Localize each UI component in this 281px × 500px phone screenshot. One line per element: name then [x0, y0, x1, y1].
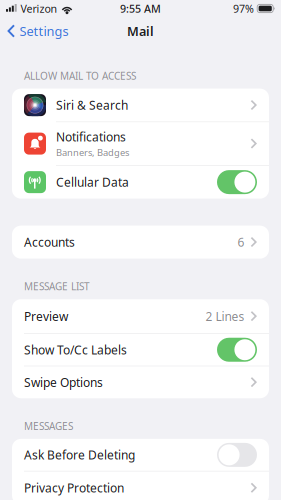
staticText: Notifications: [56, 129, 126, 145]
staticText: 9:55 AM: [120, 1, 161, 16]
button[interactable]: Ask Before Deleting: [12, 439, 269, 471]
button[interactable]: Preview: [12, 299, 269, 333]
button[interactable]: Notifications: [12, 122, 269, 165]
staticText: Siri & Search: [56, 97, 128, 113]
staticText: 6: [237, 234, 244, 250]
staticText: ALLOW MAIL TO ACCESS: [24, 69, 136, 83]
button[interactable]: On: [217, 170, 257, 194]
staticText: Privacy Protection: [24, 480, 124, 496]
button[interactable]: Cellular Data: [12, 166, 269, 199]
staticText: 97%: [233, 1, 254, 16]
button[interactable]: Privacy Protection: [12, 471, 269, 500]
staticText: Settings: [19, 22, 68, 40]
staticText: MESSAGES: [24, 419, 73, 433]
button[interactable]: On: [217, 338, 257, 362]
staticText: Show To/Cc Labels: [24, 342, 127, 358]
staticText: Banners, Badges: [56, 146, 129, 159]
staticText: Verizon: [17, 1, 60, 16]
button[interactable]: Show To/Cc Labels: [12, 334, 269, 366]
staticText: 2 Lines: [205, 308, 244, 324]
button[interactable]: Off: [217, 443, 257, 467]
staticText: Accounts: [24, 234, 75, 250]
staticText: Swipe Options: [24, 374, 103, 390]
staticText: Cellular Data: [56, 174, 129, 190]
staticText: Preview: [24, 308, 68, 324]
button[interactable]: Settings: [0, 17, 75, 45]
button[interactable]: Swipe Options: [12, 366, 269, 398]
staticText: Mail: [127, 22, 154, 40]
staticText: Ask Before Deleting: [24, 447, 135, 463]
staticText: MESSAGE LIST: [24, 280, 90, 293]
button[interactable]: Siri & Search: [12, 89, 269, 122]
button[interactable]: Accounts: [12, 226, 269, 259]
